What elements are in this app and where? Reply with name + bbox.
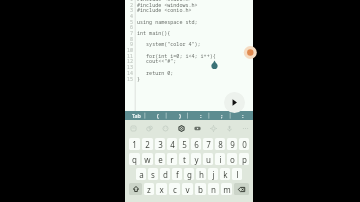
button[interactable]: 0: [239, 138, 249, 150]
button[interactable]: :: [190, 111, 211, 120]
staticText: q: [132, 154, 137, 165]
staticText: 9: [130, 41, 134, 47]
button[interactable]: Stickers: [125, 119, 141, 137]
button[interactable]: b: [195, 183, 206, 195]
button[interactable]: k: [220, 168, 230, 180]
button[interactable]: s: [148, 168, 158, 180]
button[interactable]: Assistant: [173, 119, 189, 137]
button[interactable]: Shift: [129, 183, 142, 195]
button[interactable]: 6: [191, 138, 201, 150]
staticText: u: [206, 154, 211, 165]
button[interactable]: r: [167, 153, 177, 165]
button[interactable]: h: [196, 168, 206, 180]
button[interactable]: y: [191, 153, 201, 165]
staticText: i: [219, 154, 222, 165]
staticText: 11: [127, 53, 134, 59]
button[interactable]: n: [208, 183, 219, 195]
staticText: 13: [127, 64, 134, 70]
button[interactable]: 2: [142, 138, 153, 150]
staticText: h: [199, 169, 204, 180]
staticText: t: [183, 154, 186, 165]
button[interactable]: o: [227, 153, 237, 165]
staticText: ;: [221, 112, 223, 120]
button[interactable]: p: [239, 153, 249, 165]
staticText: r: [170, 154, 174, 165]
staticText: j: [212, 169, 215, 180]
staticText: #include <stdio.h>: [137, 0, 192, 2]
button[interactable]: 9: [227, 138, 237, 150]
button[interactable]: Voice input: [221, 119, 237, 137]
staticText: int main(){: [137, 30, 171, 36]
staticText: system("color 4");: [137, 41, 201, 47]
button[interactable]: Emoji: [157, 119, 173, 137]
staticText: return 0;: [137, 70, 174, 76]
staticText: 2: [130, 2, 134, 8]
button[interactable]: ;: [211, 111, 232, 120]
button[interactable]: l: [232, 168, 242, 180]
staticText: ): [179, 112, 181, 120]
staticText: 3: [158, 139, 163, 150]
button[interactable]: :: [232, 111, 253, 120]
button[interactable]: j: [208, 168, 218, 180]
button[interactable]: 4: [167, 138, 177, 150]
staticText: 10: [127, 47, 134, 53]
button[interactable]: a: [136, 168, 146, 180]
button[interactable]: ): [169, 111, 190, 120]
staticText: w: [144, 154, 151, 165]
staticText: for(int i=0; i<4; i++){: [137, 53, 216, 59]
button[interactable]: v: [182, 183, 193, 195]
button[interactable]: f: [172, 168, 182, 180]
staticText: 3: [130, 7, 134, 13]
staticText: #include <windows.h>: [137, 2, 198, 8]
button[interactable]: Run: [224, 92, 245, 113]
staticText: l: [236, 169, 239, 180]
button[interactable]: 3: [155, 138, 165, 150]
staticText: using namespace std;: [137, 19, 198, 25]
button[interactable]: 5: [179, 138, 189, 150]
staticText: 0: [242, 139, 247, 150]
button[interactable]: q: [129, 153, 140, 165]
button[interactable]: 8: [215, 138, 225, 150]
staticText: 9: [230, 139, 235, 150]
staticText: o: [230, 154, 235, 165]
staticText: 1: [130, 0, 134, 2]
button[interactable]: 7: [203, 138, 213, 150]
button[interactable]: GIF: [141, 119, 157, 137]
button[interactable]: More options: [237, 119, 253, 137]
button[interactable]: u: [203, 153, 213, 165]
button[interactable]: t: [179, 153, 189, 165]
staticText: 6: [130, 24, 134, 30]
button[interactable]: x: [156, 183, 167, 195]
staticText: f: [176, 169, 179, 180]
staticText: a: [139, 169, 144, 180]
button[interactable]: e: [155, 153, 165, 165]
staticText: c: [173, 184, 177, 195]
button[interactable]: m: [221, 183, 232, 195]
staticText: 1: [132, 139, 137, 150]
staticText: z: [147, 184, 151, 195]
staticText: :: [242, 112, 244, 120]
button[interactable]: c: [169, 183, 180, 195]
button[interactable]: w: [142, 153, 153, 165]
button[interactable]: 1: [129, 138, 140, 150]
button[interactable]: (: [147, 111, 169, 120]
staticText: k: [223, 169, 228, 180]
button[interactable]: Backspace: [234, 183, 249, 195]
staticText: Tab: [132, 112, 141, 119]
staticText: (: [157, 112, 159, 120]
staticText: p: [242, 154, 247, 165]
button[interactable]: YouTube: [189, 119, 205, 137]
button[interactable]: g: [184, 168, 194, 180]
staticText: e: [158, 154, 163, 165]
staticText: m: [223, 184, 231, 195]
button[interactable]: Translate: [205, 119, 221, 137]
button[interactable]: Tab: [125, 111, 147, 120]
button[interactable]: d: [160, 168, 170, 180]
staticText: 4: [130, 13, 134, 19]
staticText: :: [200, 112, 202, 120]
button[interactable]: z: [144, 183, 154, 195]
staticText: n: [211, 184, 216, 195]
staticText: 6: [194, 139, 199, 150]
button[interactable]: i: [215, 153, 225, 165]
staticText: 12: [127, 58, 134, 64]
